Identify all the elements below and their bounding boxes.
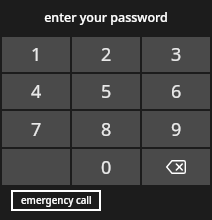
- staticText: 6: [171, 79, 182, 104]
- staticText: 5: [101, 79, 112, 104]
- staticText: 4: [31, 79, 42, 104]
- button[interactable]: 7: [2, 111, 70, 147]
- button[interactable]: 5: [72, 74, 140, 109]
- staticText: 2: [101, 42, 112, 67]
- button[interactable]: 8: [72, 111, 140, 147]
- staticText: enter your password: [44, 9, 168, 26]
- button[interactable]: 2: [72, 37, 140, 72]
- button[interactable]: 0: [72, 149, 140, 185]
- staticText: 8: [101, 117, 112, 142]
- button[interactable]: 9: [142, 111, 210, 147]
- button[interactable]: emergency call: [11, 190, 101, 211]
- button[interactable]: 1: [2, 37, 70, 72]
- staticText: 3: [171, 42, 182, 67]
- staticText: emergency call: [21, 194, 92, 207]
- button[interactable]: 6: [142, 74, 210, 109]
- staticText: 9: [171, 117, 182, 142]
- staticText: 7: [31, 117, 42, 142]
- staticText: 1: [31, 42, 42, 67]
- button[interactable]: 4: [2, 74, 70, 109]
- button[interactable]: 3: [142, 37, 210, 72]
- staticText: 0: [101, 155, 112, 180]
- button[interactable]: Backspace: [142, 149, 210, 185]
